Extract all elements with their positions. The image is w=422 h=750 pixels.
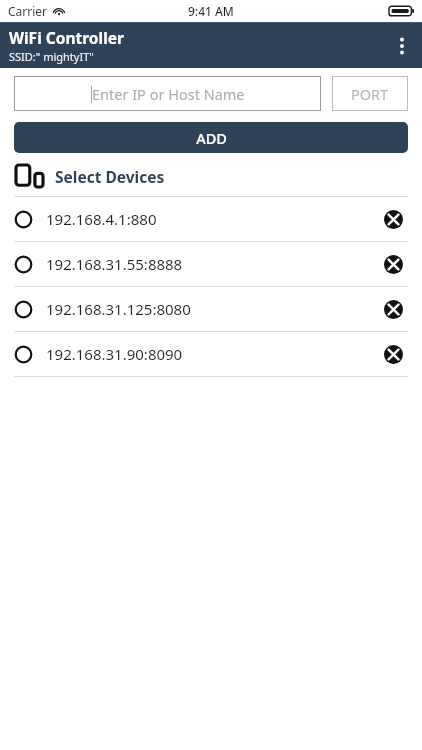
button[interactable]: Enter IP or Host Name	[14, 76, 321, 111]
button[interactable]: More options	[382, 23, 422, 68]
staticText: PORT	[351, 84, 389, 104]
button[interactable]: 192.168.31.90:8090	[0, 332, 422, 376]
button[interactable]: Delete 192.168.31.125:8080	[378, 294, 408, 324]
staticText: ADD	[196, 128, 227, 148]
button[interactable]: Delete 192.168.4.1:880	[378, 204, 408, 234]
button[interactable]: Delete 192.168.31.55:8888	[378, 249, 408, 279]
staticText: Enter IP or Host Name	[92, 84, 245, 104]
staticText: 9:41 AM	[188, 3, 234, 19]
button[interactable]: 192.168.31.125:8080	[0, 287, 422, 331]
staticText: 192.168.31.90:8090	[46, 344, 378, 364]
staticText: 192.168.31.55:8888	[46, 254, 378, 274]
button[interactable]: 192.168.4.1:880	[0, 197, 422, 241]
staticText: Select Devices	[55, 166, 165, 187]
staticText: 192.168.4.1:880	[46, 209, 378, 229]
button[interactable]: ADD	[14, 122, 408, 153]
staticText: WiFi Controller	[9, 27, 124, 48]
button[interactable]: PORT	[332, 76, 408, 111]
staticText: 192.168.31.125:8080	[46, 299, 378, 319]
staticText: SSID:" mightyIT"	[9, 49, 94, 64]
button[interactable]: Delete 192.168.31.90:8090	[378, 339, 408, 369]
button[interactable]: 192.168.31.55:8888	[0, 242, 422, 286]
staticText: Carrier	[8, 3, 48, 19]
